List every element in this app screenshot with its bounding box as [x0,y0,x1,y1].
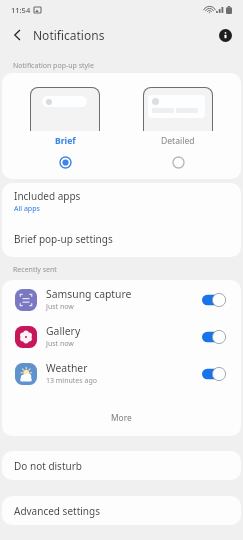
staticText: Included apps [14,189,81,203]
staticText: Notifications [33,27,105,43]
button[interactable]: Toggle [202,330,226,344]
staticText: Advanced settings [14,504,100,518]
staticText: Just now [46,302,74,312]
staticText: Do not disturb [14,459,82,473]
button[interactable]: Detailed [170,154,187,171]
staticText: Weather [46,361,88,375]
staticText: 11:54 [11,5,31,15]
button[interactable]: Brief selected [57,154,74,171]
button[interactable]: Back [6,24,28,46]
button[interactable]: Brief pop-up settings [2,220,241,257]
button[interactable]: Toggle [202,293,226,307]
button[interactable]: Detailed [128,73,228,171]
staticText: Brief pop-up settings [14,232,113,246]
button[interactable]: Toggle [202,367,226,381]
staticText: Just now [46,339,74,349]
staticText: Gallery [46,324,81,338]
staticText: Brief [55,135,76,147]
staticText: Notification pop-up style [13,61,94,71]
button[interactable]: Included apps [2,183,241,220]
button[interactable]: Info [215,25,235,45]
button[interactable]: Advanced settings [2,496,241,525]
button[interactable]: Weather [2,355,241,392]
staticText: Detailed [161,135,195,147]
staticText: Samsung capture [46,287,132,301]
button[interactable]: Samsung capture [2,281,241,318]
button[interactable]: More [2,392,241,436]
staticText: All apps [14,204,40,214]
staticText: Recently sent [13,265,57,275]
button[interactable]: Gallery [2,318,241,355]
staticText: 13 minutes ago [46,376,97,386]
staticText: More [111,412,132,423]
button[interactable]: Do not disturb [2,451,241,480]
button[interactable]: Brief [15,73,115,171]
